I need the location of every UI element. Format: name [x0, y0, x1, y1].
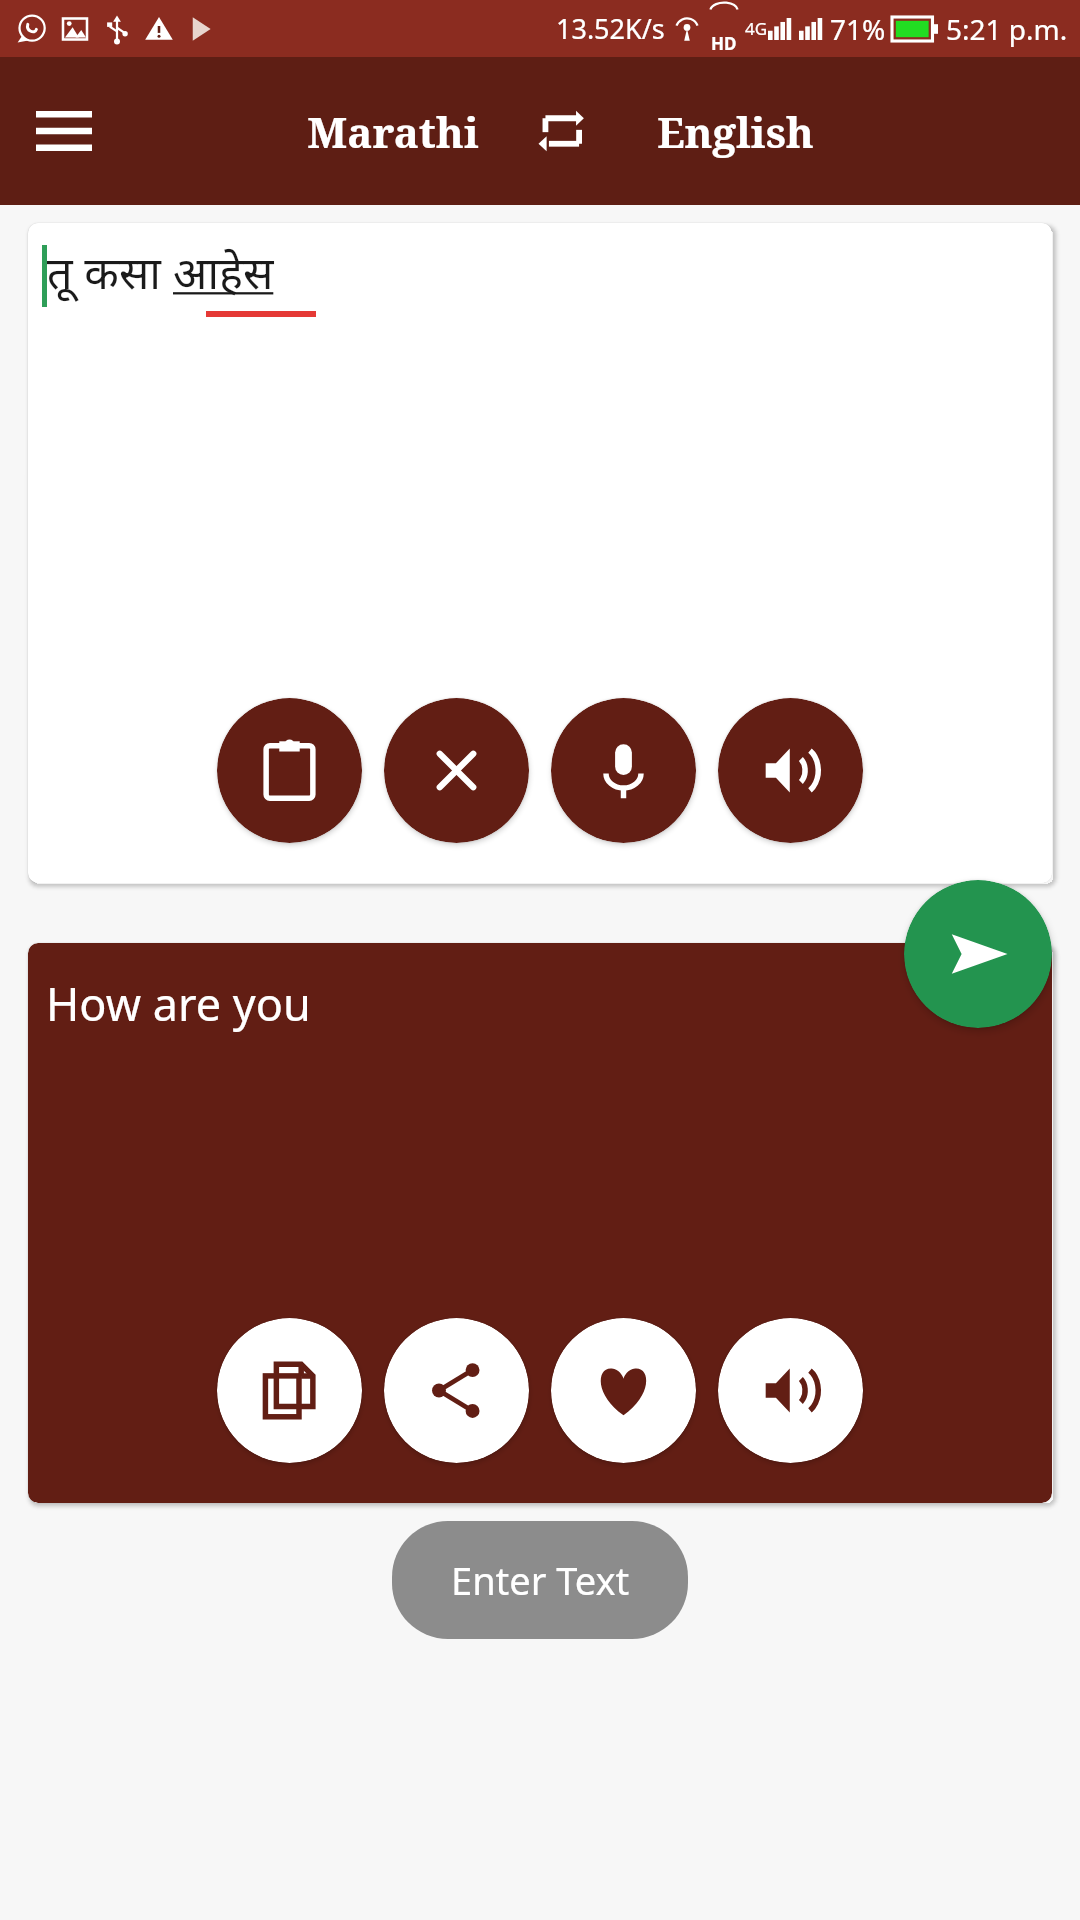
button[interactable]: Translate [904, 880, 1052, 1028]
button[interactable]: How are you [28, 943, 1052, 1503]
button[interactable]: Speak translation [718, 1318, 863, 1463]
staticText: How are you [46, 973, 311, 1034]
button[interactable]: Clear [384, 698, 529, 843]
staticText: 13.52K/s [556, 10, 665, 47]
button[interactable]: Enter Text [392, 1521, 688, 1639]
staticText: English [657, 103, 814, 160]
button[interactable]: Marathi [268, 103, 518, 160]
button[interactable]: Paste [217, 698, 362, 843]
staticText: Enter Text [451, 1554, 630, 1606]
staticText: तू कसा [47, 241, 173, 302]
button[interactable]: Swap languages [518, 85, 610, 177]
staticText: आहेस [173, 241, 274, 302]
button[interactable]: Favourite [551, 1318, 696, 1463]
button[interactable]: तू कसा [28, 223, 1052, 883]
staticText: 71% [830, 10, 886, 48]
button[interactable]: Voice input [551, 698, 696, 843]
button[interactable]: Copy [217, 1318, 362, 1463]
staticText: Marathi [307, 103, 479, 160]
staticText: 5:21 p.m. [946, 10, 1068, 48]
button[interactable]: English [610, 103, 860, 160]
button[interactable]: Speak input [718, 698, 863, 843]
staticText: HD [711, 32, 737, 55]
button[interactable]: Menu [26, 93, 102, 169]
button[interactable]: Share [384, 1318, 529, 1463]
staticText: 4G [745, 17, 768, 40]
